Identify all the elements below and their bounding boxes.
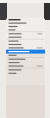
button[interactable] [6,28,45,32]
button[interactable] [6,35,45,39]
button[interactable] [6,68,45,72]
button[interactable] [6,25,45,28]
button[interactable] [6,18,45,21]
button[interactable] [6,43,45,46]
button[interactable] [6,72,45,75]
button[interactable] [6,39,45,43]
button[interactable] [6,64,45,68]
button[interactable] [6,32,45,35]
button[interactable] [6,50,45,54]
button[interactable] [6,61,45,64]
button[interactable] [6,54,45,57]
button[interactable] [6,46,45,50]
button[interactable] [6,21,45,25]
button[interactable] [6,57,45,61]
